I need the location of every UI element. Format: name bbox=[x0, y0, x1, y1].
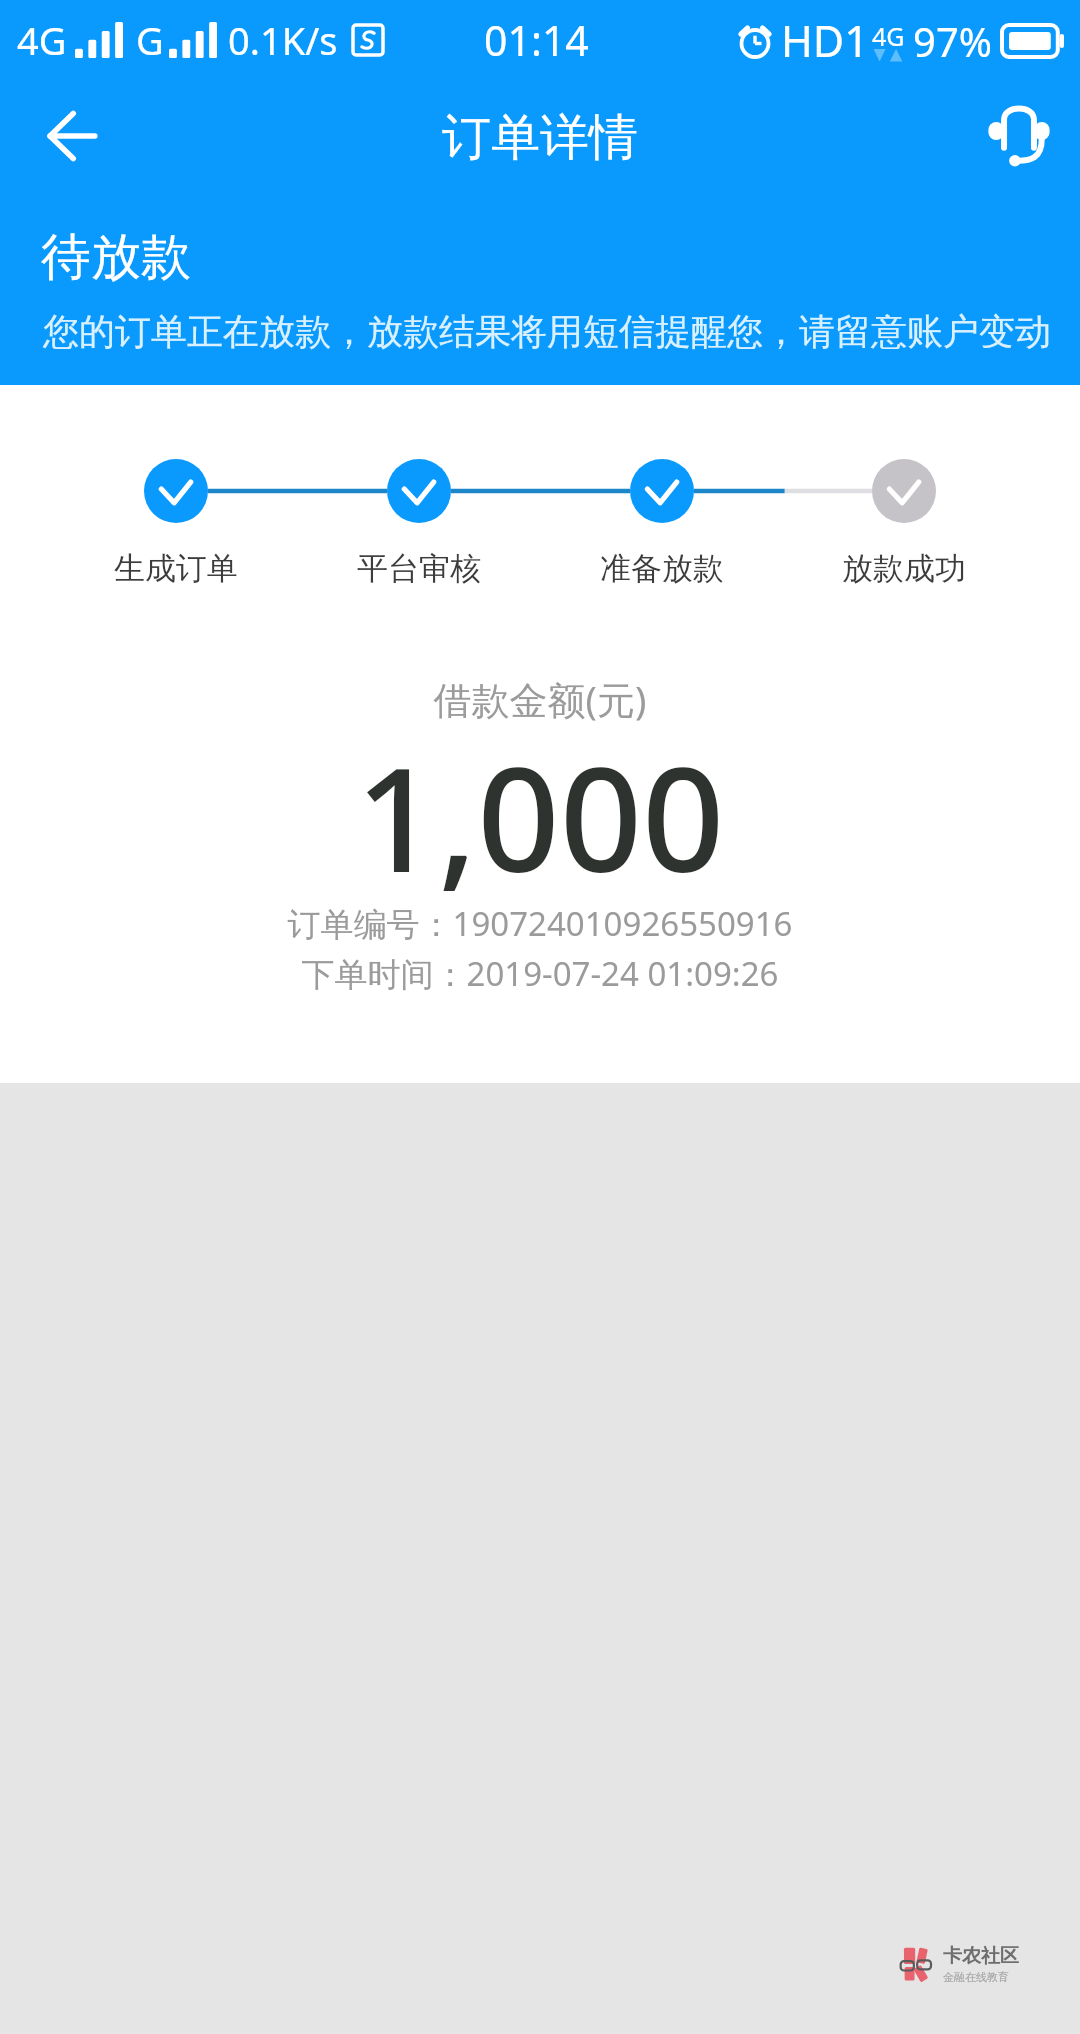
button[interactable]: Customer service bbox=[959, 77, 1079, 185]
staticText: 0.1K/s bbox=[228, 14, 338, 66]
staticText: 待放款 bbox=[41, 226, 191, 289]
staticText: 97% bbox=[913, 14, 992, 68]
button[interactable]: 准备放款 bbox=[582, 549, 742, 588]
staticText: 金融在线教育 bbox=[943, 1970, 1009, 1984]
button[interactable]: 放款成功 bbox=[824, 549, 984, 588]
button[interactable]: Back bbox=[5, 82, 135, 190]
staticText: 放款成功 bbox=[842, 549, 966, 588]
button[interactable]: 生成订单 bbox=[96, 549, 256, 588]
staticText: 4G bbox=[17, 14, 67, 66]
staticText: 生成订单 bbox=[114, 549, 238, 588]
staticText: G bbox=[136, 14, 164, 66]
staticText: 1,000 bbox=[0, 718, 1080, 914]
staticText: 卡农社区 bbox=[943, 1944, 1019, 1968]
button[interactable]: 平台审核 bbox=[339, 549, 499, 588]
staticText: HD1 bbox=[781, 11, 869, 70]
staticText: 准备放款 bbox=[600, 549, 724, 588]
staticText: 下单时间：2019-07-24 01:09:26 bbox=[0, 951, 1080, 996]
staticText: 订单编号：190724010926550916 bbox=[0, 901, 1080, 946]
staticText: 借款金额(元) bbox=[0, 673, 1080, 725]
staticText: 4G bbox=[872, 19, 905, 53]
staticText: 平台审核 bbox=[357, 549, 481, 588]
staticText: 您的订单正在放款，放款结果将用短信提醒您，请留意账户变动 bbox=[43, 309, 1051, 354]
staticText: 订单详情 bbox=[442, 107, 638, 169]
staticText: 01:14 bbox=[484, 12, 589, 68]
